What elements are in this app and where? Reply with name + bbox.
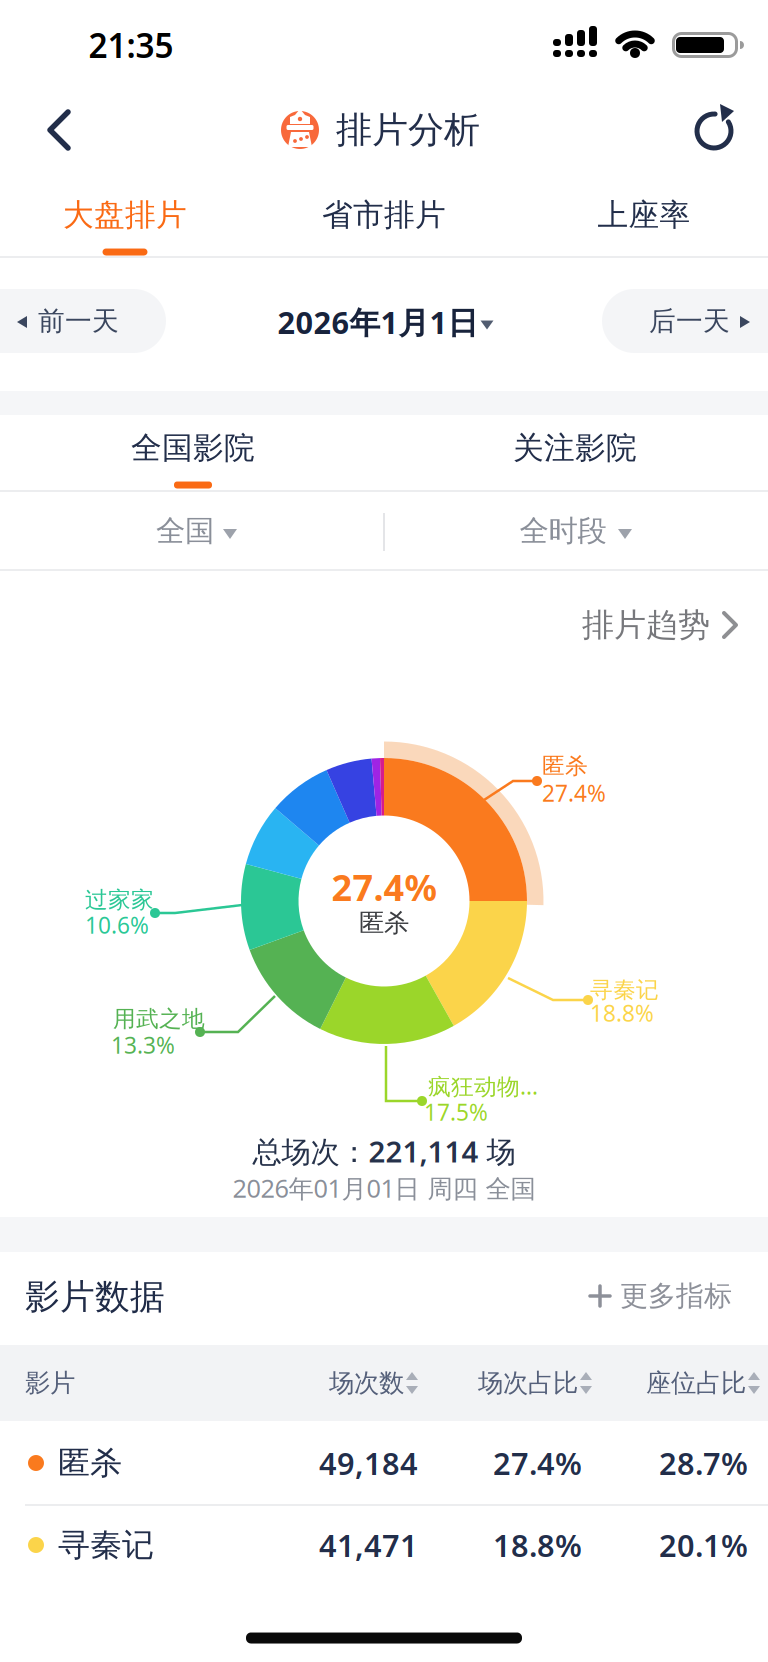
- staticText: 41,471: [319, 1525, 418, 1565]
- staticText: 匿杀: [542, 752, 588, 780]
- staticText: 18.8%: [590, 998, 654, 1028]
- staticText: 13.3%: [111, 1030, 175, 1060]
- staticText: 28.7%: [659, 1443, 748, 1483]
- staticText: 27.4%: [542, 778, 606, 808]
- staticText: 后一天: [649, 305, 730, 337]
- staticText: 省市排片: [322, 196, 446, 234]
- staticText: 匿杀: [359, 907, 409, 938]
- staticText: 全国影院: [131, 429, 255, 467]
- staticText: 20.1%: [659, 1525, 748, 1565]
- staticText: 总场次：221,114 场: [252, 1131, 515, 1170]
- button[interactable]: 排片趋势: [0, 0, 768, 1662]
- button[interactable]: 全国: [0, 0, 380, 78]
- button[interactable]: 关注影院: [0, 0, 380, 72]
- staticText: 全时段: [519, 513, 606, 549]
- staticText: 49,184: [319, 1443, 418, 1483]
- staticText: 更多指标: [620, 1279, 732, 1313]
- staticText: 影片: [25, 1367, 75, 1398]
- staticText: 2026年01月01日 周四 全国: [232, 1171, 535, 1205]
- staticText: 匿杀: [58, 1443, 122, 1483]
- button[interactable]: 2026年1月1日: [0, 0, 768, 1662]
- staticText: 全国: [156, 513, 214, 549]
- staticText: 用武之地: [113, 1005, 205, 1033]
- staticText: 寻秦记: [58, 1525, 154, 1565]
- staticText: 21:35: [88, 23, 173, 67]
- staticText: 大盘排片: [63, 196, 187, 234]
- button[interactable]: 更多指标: [0, 0, 768, 1662]
- staticText: 关注影院: [513, 429, 637, 467]
- staticText: 座位占比: [646, 1367, 746, 1398]
- staticText: 寻秦记: [590, 976, 659, 1004]
- staticText: 疯狂动物...: [428, 1071, 538, 1101]
- staticText: 27.4%: [493, 1443, 582, 1483]
- button[interactable]: 全时段: [0, 0, 380, 78]
- button[interactable]: 省市排片: [0, 0, 200, 70]
- staticText: 前一天: [38, 305, 119, 337]
- staticText: 10.6%: [85, 910, 149, 940]
- staticText: 18.8%: [493, 1525, 582, 1565]
- button[interactable]: 大盘排片: [0, 0, 200, 70]
- staticText: 过家家: [85, 886, 154, 914]
- staticText: 影片数据: [25, 1276, 165, 1318]
- button[interactable]: 上座率: [0, 0, 200, 70]
- staticText: 排片趋势: [582, 605, 710, 645]
- staticText: 27.4%: [331, 863, 436, 911]
- staticText: 上座率: [597, 196, 690, 234]
- button[interactable]: 前一天: [0, 0, 768, 1662]
- staticText: 排片分析: [336, 108, 480, 152]
- staticText: 场次数: [329, 1367, 404, 1398]
- staticText: 17.5%: [424, 1097, 488, 1127]
- staticText: 场次占比: [478, 1367, 578, 1398]
- button[interactable]: 后一天: [0, 0, 768, 1662]
- staticText: 2026年1月1日: [277, 302, 478, 342]
- button[interactable]: 全国影院: [0, 0, 380, 72]
